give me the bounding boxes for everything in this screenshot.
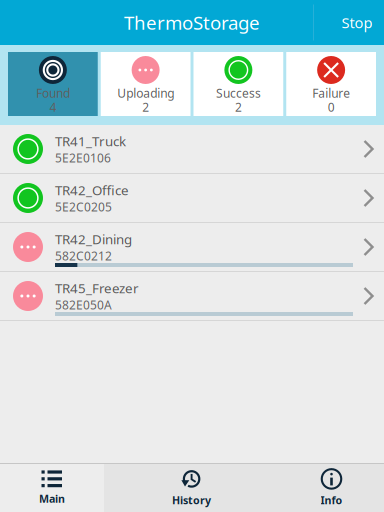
button[interactable]: Found [8,52,98,116]
button[interactable]: Stop [330,0,384,45]
staticText: Uploading [117,85,174,101]
staticText: 5E2E0106 [55,150,111,166]
button[interactable]: Uploading [101,52,191,116]
staticText: 582C0212 [55,248,112,264]
staticText: TR45_Freezer [55,279,139,297]
staticText: 4 [49,99,56,115]
staticText: ThermoStorage [124,10,260,35]
button[interactable]: Main [0,464,104,512]
staticText: 5E2C0205 [55,199,112,215]
button[interactable]: History [104,464,279,512]
staticText: Success [216,85,261,101]
button[interactable]: TR42_Office [0,174,384,223]
button[interactable]: Failure [286,52,376,116]
staticText: TR41_Truck [55,132,126,150]
staticText: Info [320,493,342,507]
staticText: 2 [142,99,149,115]
staticText: Failure [312,85,350,101]
staticText: Found [36,85,70,101]
staticText: Main [39,491,65,506]
staticText: TR42_Dining [55,230,132,248]
button[interactable]: TR41_Truck [0,125,384,174]
button[interactable]: TR45_Freezer [0,272,384,321]
staticText: TR42_Office [55,181,129,199]
staticText: History [172,493,211,507]
button[interactable]: TR42_Dining [0,223,384,272]
staticText: 2 [235,99,242,115]
button[interactable]: Success [193,52,283,116]
staticText: 0 [328,99,335,115]
staticText: 582E050A [55,297,112,313]
staticText: Stop [341,13,372,32]
button[interactable]: Info [279,464,384,512]
